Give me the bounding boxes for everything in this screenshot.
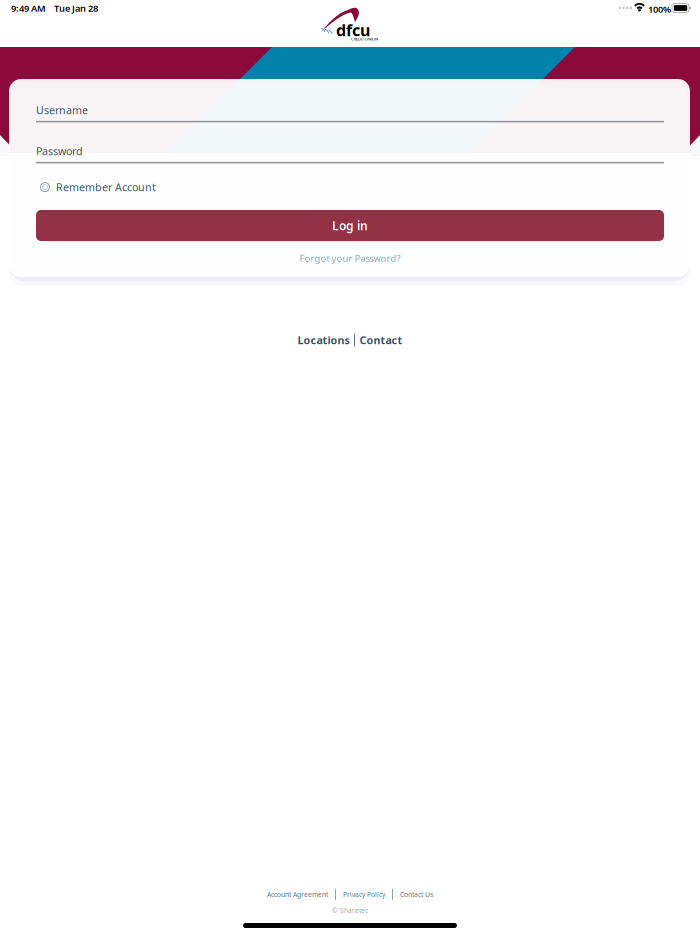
- staticText: Account Agreement: [267, 890, 328, 899]
- staticText: 100%: [648, 3, 671, 15]
- button[interactable]: Log in: [0, 0, 628, 31]
- staticText: Contact: [359, 333, 402, 347]
- staticText: Password: [36, 144, 83, 158]
- staticText: CREDIT UNION: [351, 36, 378, 42]
- button[interactable]: Contact Us: [400, 889, 433, 900]
- staticText: © Sharetec: [332, 906, 368, 915]
- button[interactable]: Forgot your Password?: [0, 0, 628, 14]
- staticText: dfcu: [336, 19, 370, 41]
- button[interactable]: Contact: [359, 333, 402, 347]
- staticText: Username: [36, 103, 88, 117]
- staticText: Remember Account: [56, 180, 156, 194]
- staticText: Forgot your Password?: [299, 252, 400, 264]
- staticText: Locations: [297, 333, 349, 347]
- button[interactable]: Locations: [297, 333, 349, 347]
- button[interactable]: Privacy Policy: [343, 889, 385, 900]
- staticText: Contact Us: [400, 890, 433, 899]
- staticText: Tue Jan 28: [54, 2, 98, 14]
- staticText: Privacy Policy: [343, 890, 385, 899]
- button[interactable]: Remember Account: [0, 0, 200, 16]
- staticText: 9:49 AM: [11, 2, 46, 14]
- staticText: Log in: [332, 217, 368, 233]
- button[interactable]: Account Agreement: [267, 889, 328, 900]
